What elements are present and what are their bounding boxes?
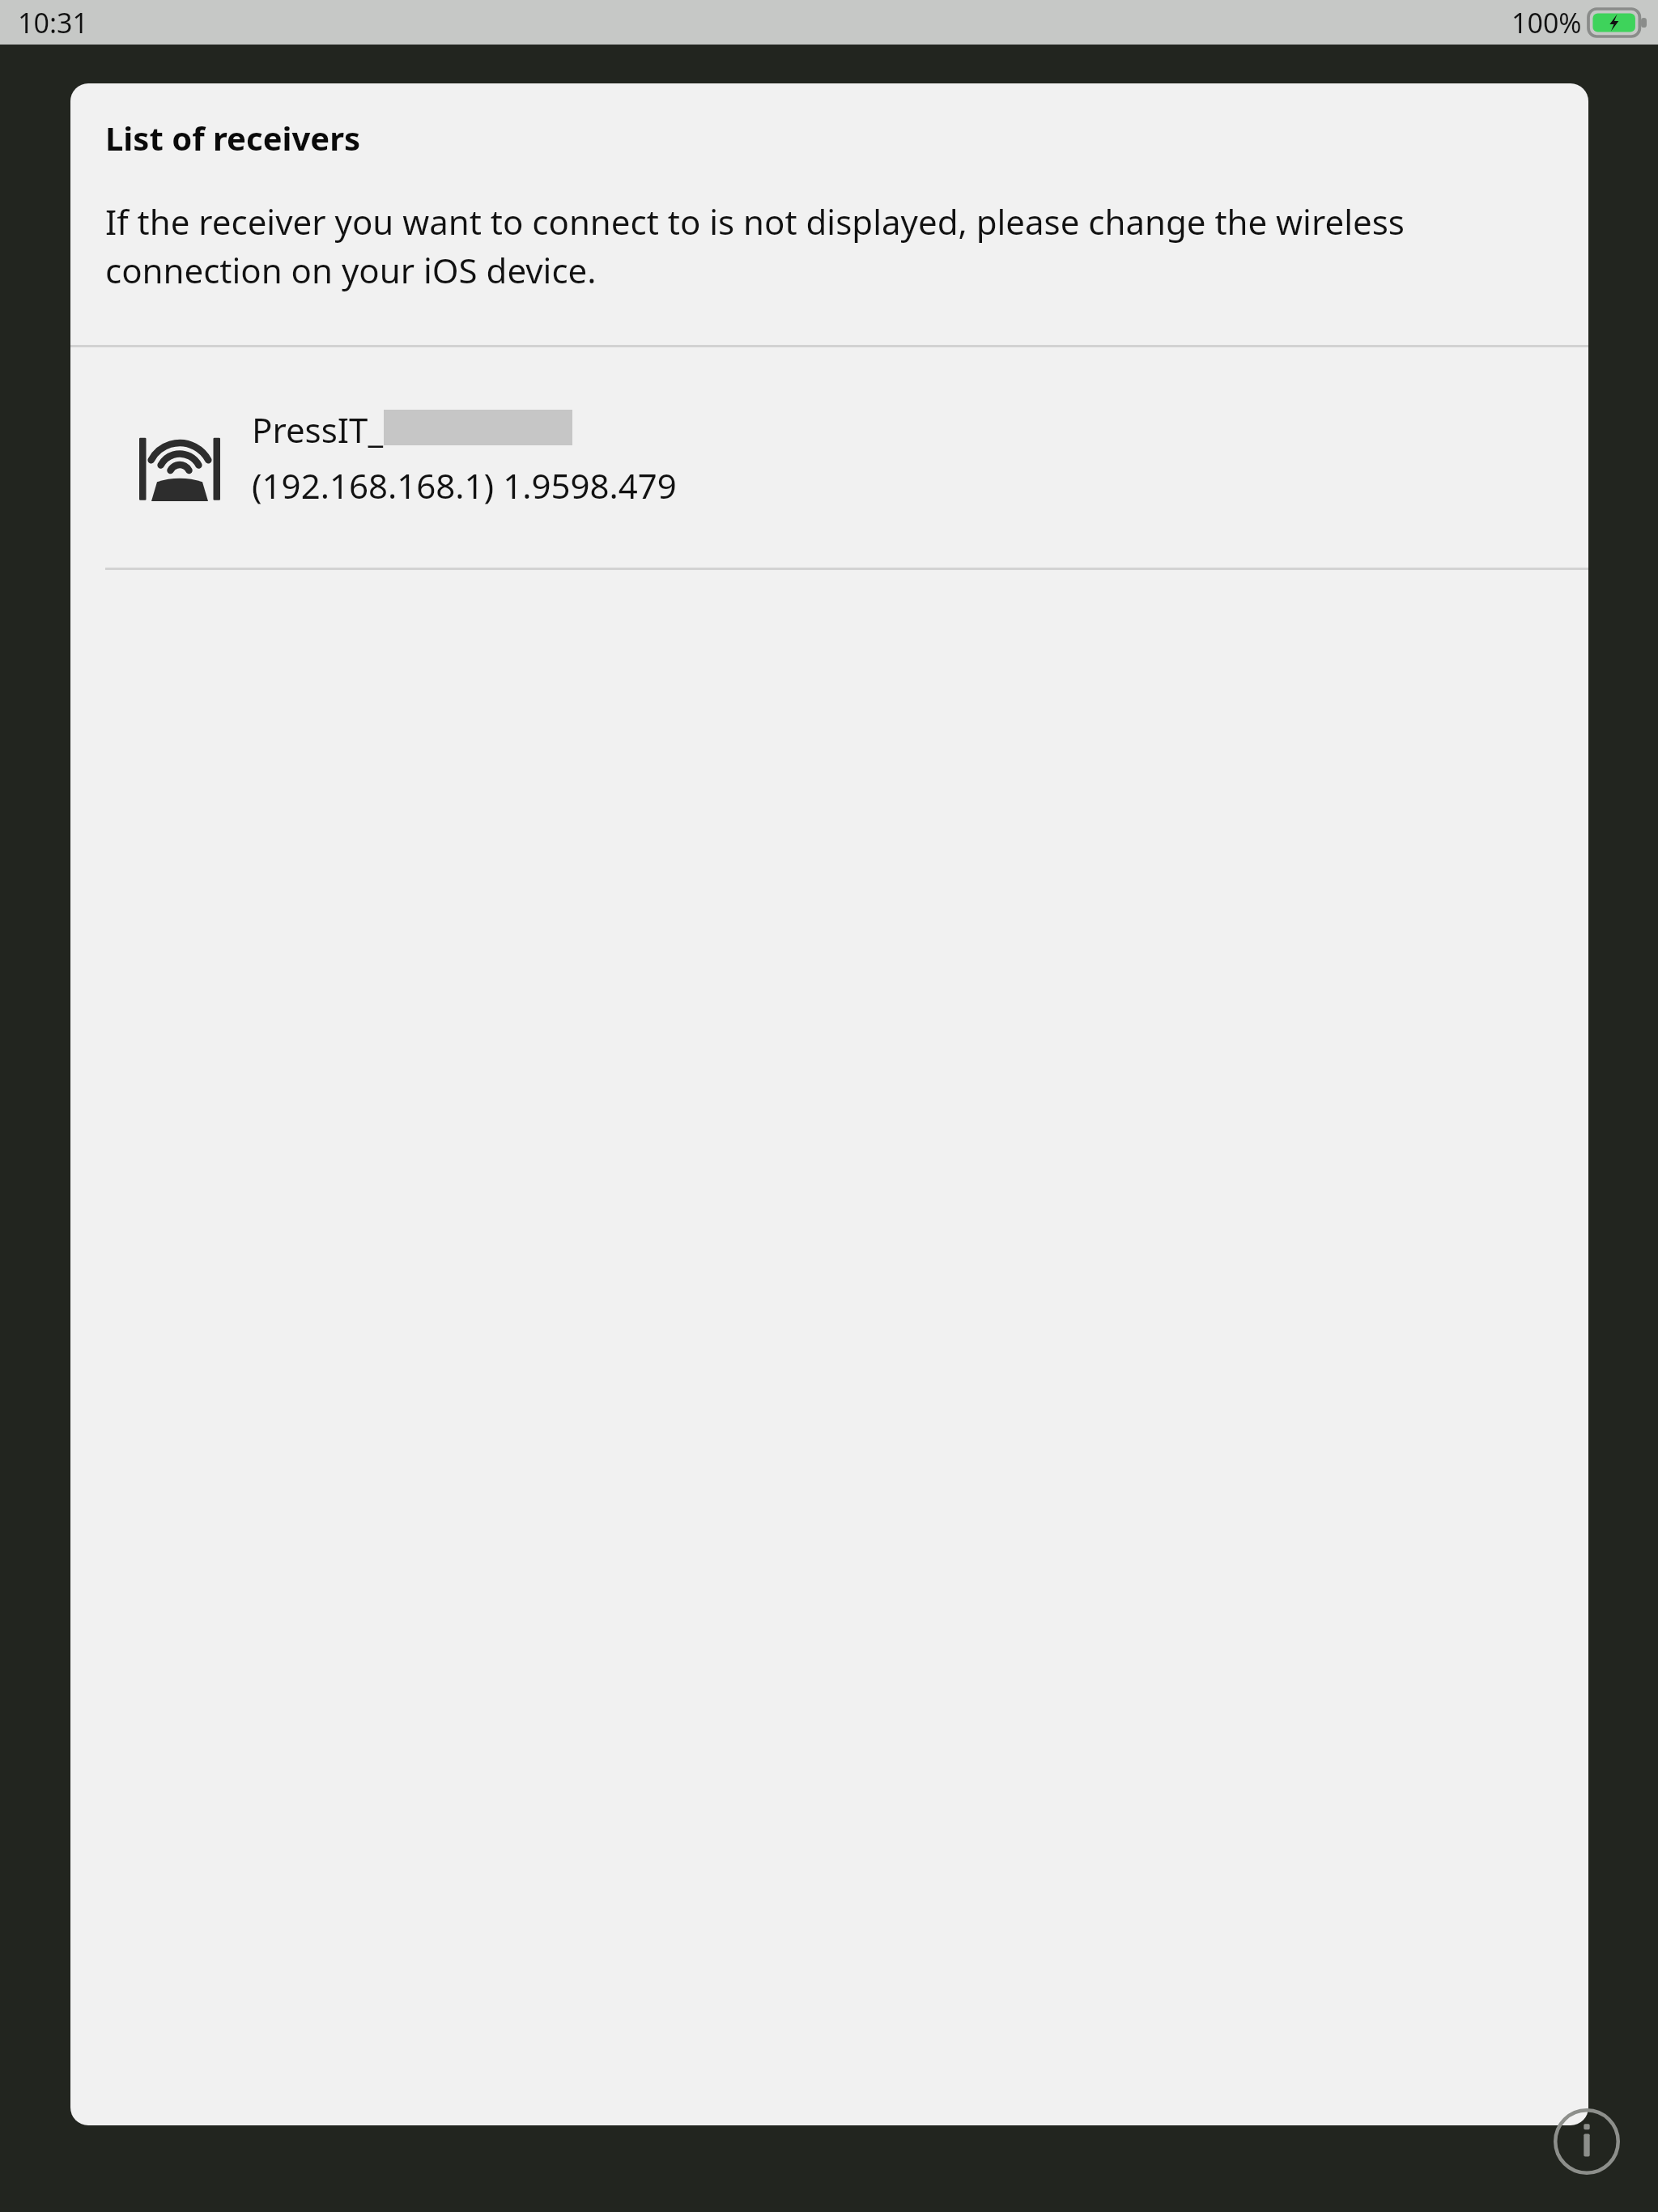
staticText: List of receivers (105, 116, 361, 160)
button[interactable]: PressIT_ (70, 347, 1588, 568)
staticText: (192.168.168.1) 1.9598.479 (252, 462, 677, 508)
staticText: 100% (1511, 4, 1582, 41)
staticText: 10:31 (18, 4, 88, 41)
button[interactable]: Information (1539, 2094, 1635, 2189)
staticText: PressIT_ (252, 406, 384, 453)
staticText: If the receiver you want to connect to i… (105, 198, 1482, 293)
